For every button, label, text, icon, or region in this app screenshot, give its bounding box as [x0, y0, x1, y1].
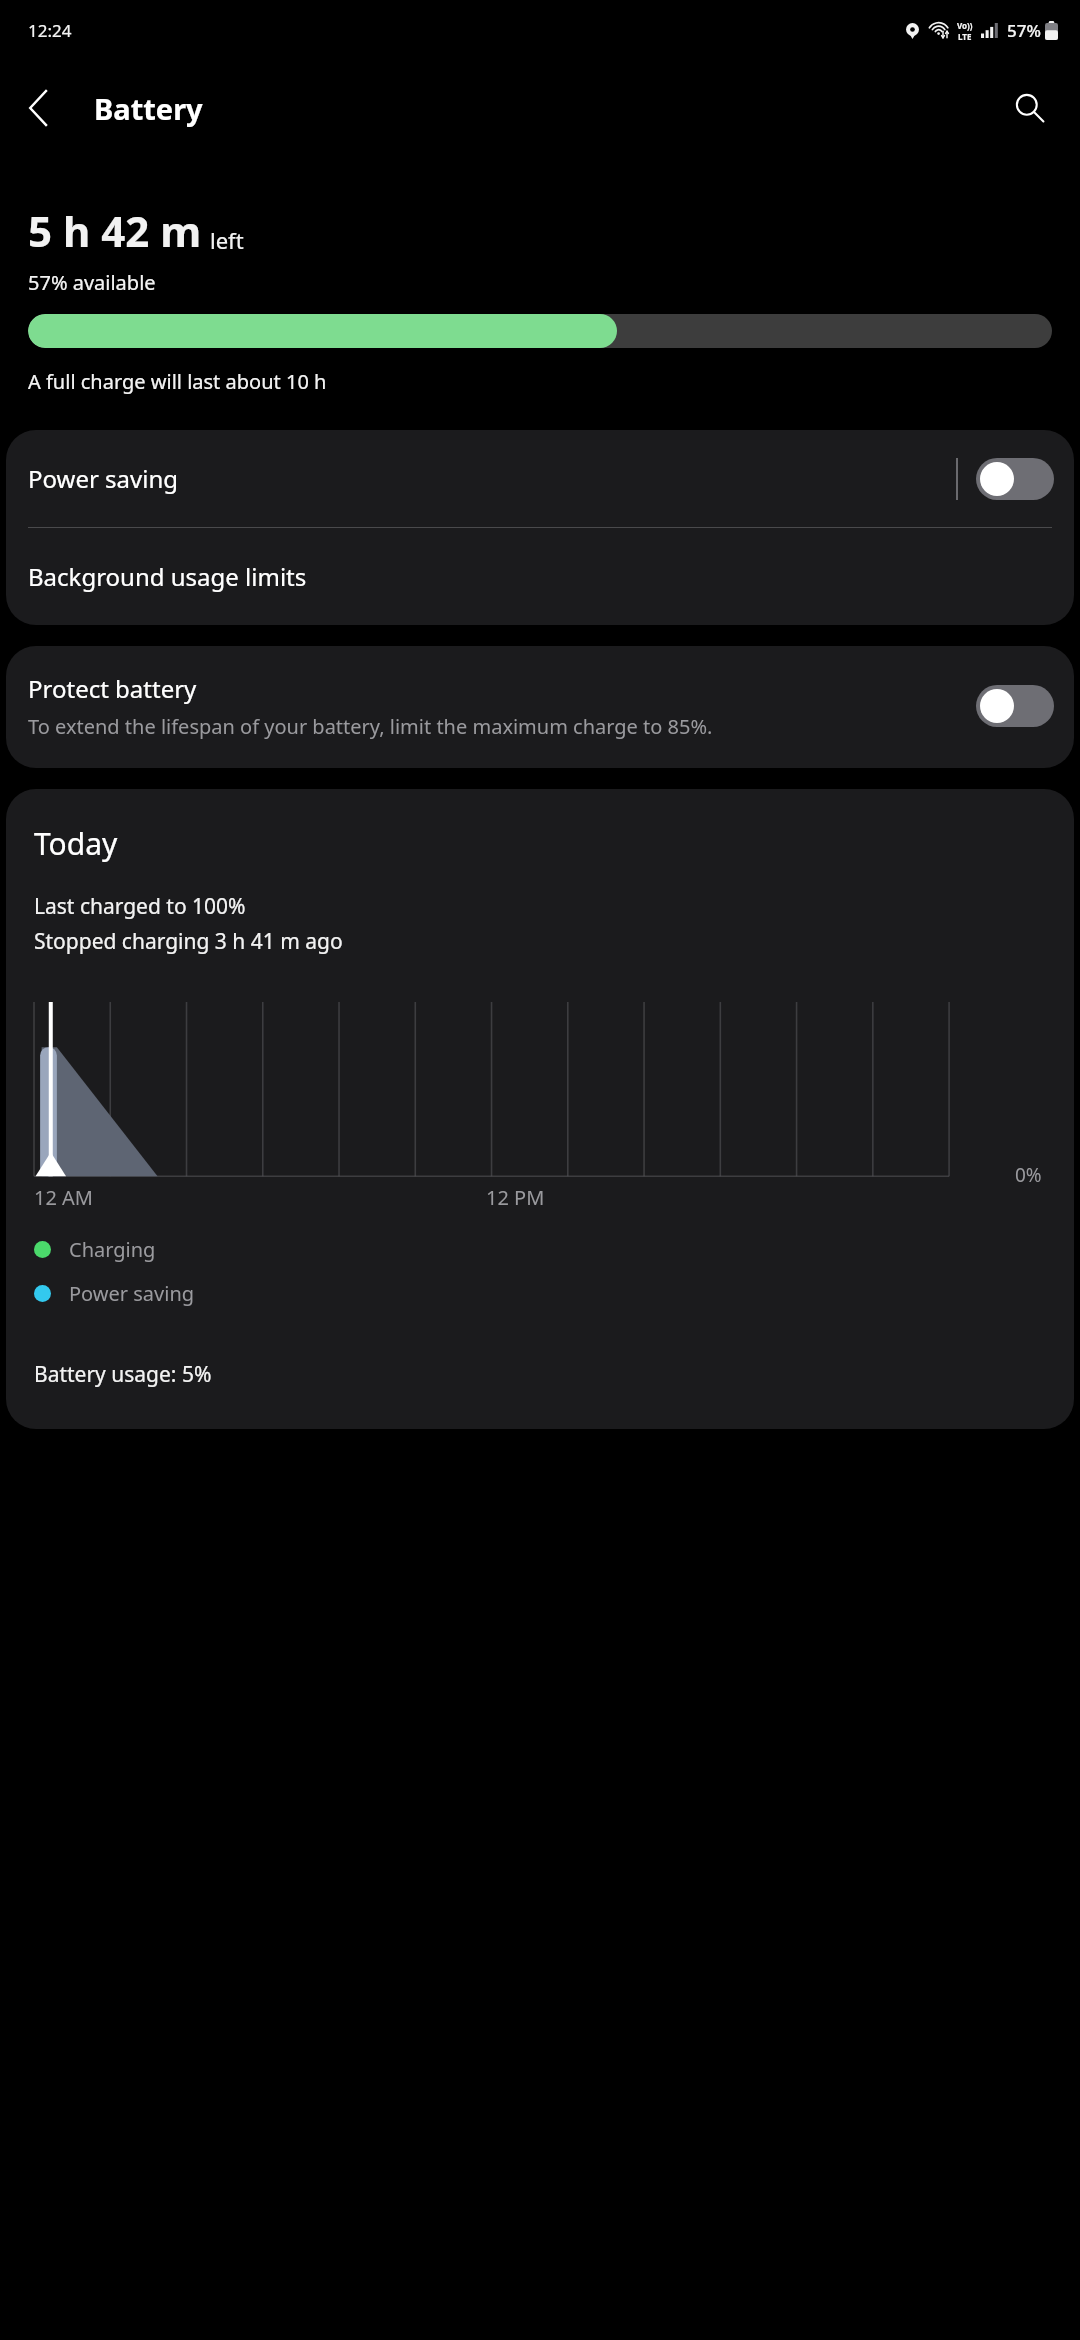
staticText: 12:24 — [28, 19, 72, 42]
staticText: To extend the lifespan of your battery, … — [28, 713, 713, 740]
button[interactable]: Background usage limits — [6, 528, 1074, 625]
button[interactable]: Protect battery — [6, 646, 1074, 768]
staticText: Today — [34, 823, 118, 864]
staticText: Last charged to 100% — [34, 892, 246, 921]
button[interactable]: Back — [20, 83, 58, 133]
staticText: LTE — [958, 31, 972, 42]
staticText: 12 PM — [486, 1184, 545, 1211]
button[interactable]: Toggle — [976, 458, 1054, 500]
staticText: Power saving — [69, 1280, 195, 1307]
staticText: 5 h 42 m — [28, 202, 202, 259]
staticText: Vo)) — [957, 20, 973, 31]
staticText: 12 AM — [34, 1184, 93, 1211]
staticText: 57% available — [28, 269, 156, 296]
staticText: A full charge will last about 10 h — [28, 368, 327, 395]
button[interactable]: Toggle — [976, 685, 1054, 727]
staticText: Background usage limits — [28, 560, 307, 593]
staticText: Battery usage: 5% — [34, 1360, 212, 1389]
button[interactable]: Search — [1006, 84, 1054, 132]
staticText: Battery — [94, 89, 203, 128]
button[interactable]: Power saving — [6, 430, 1074, 527]
staticText: 0% — [1015, 1162, 1042, 1188]
staticText: 57% — [1007, 19, 1041, 42]
staticText: Protect battery — [28, 672, 197, 705]
staticText: Power saving — [28, 462, 956, 495]
staticText: Stopped charging 3 h 41 m ago — [34, 927, 343, 956]
staticText: left — [210, 225, 244, 255]
staticText: Charging — [69, 1236, 156, 1263]
